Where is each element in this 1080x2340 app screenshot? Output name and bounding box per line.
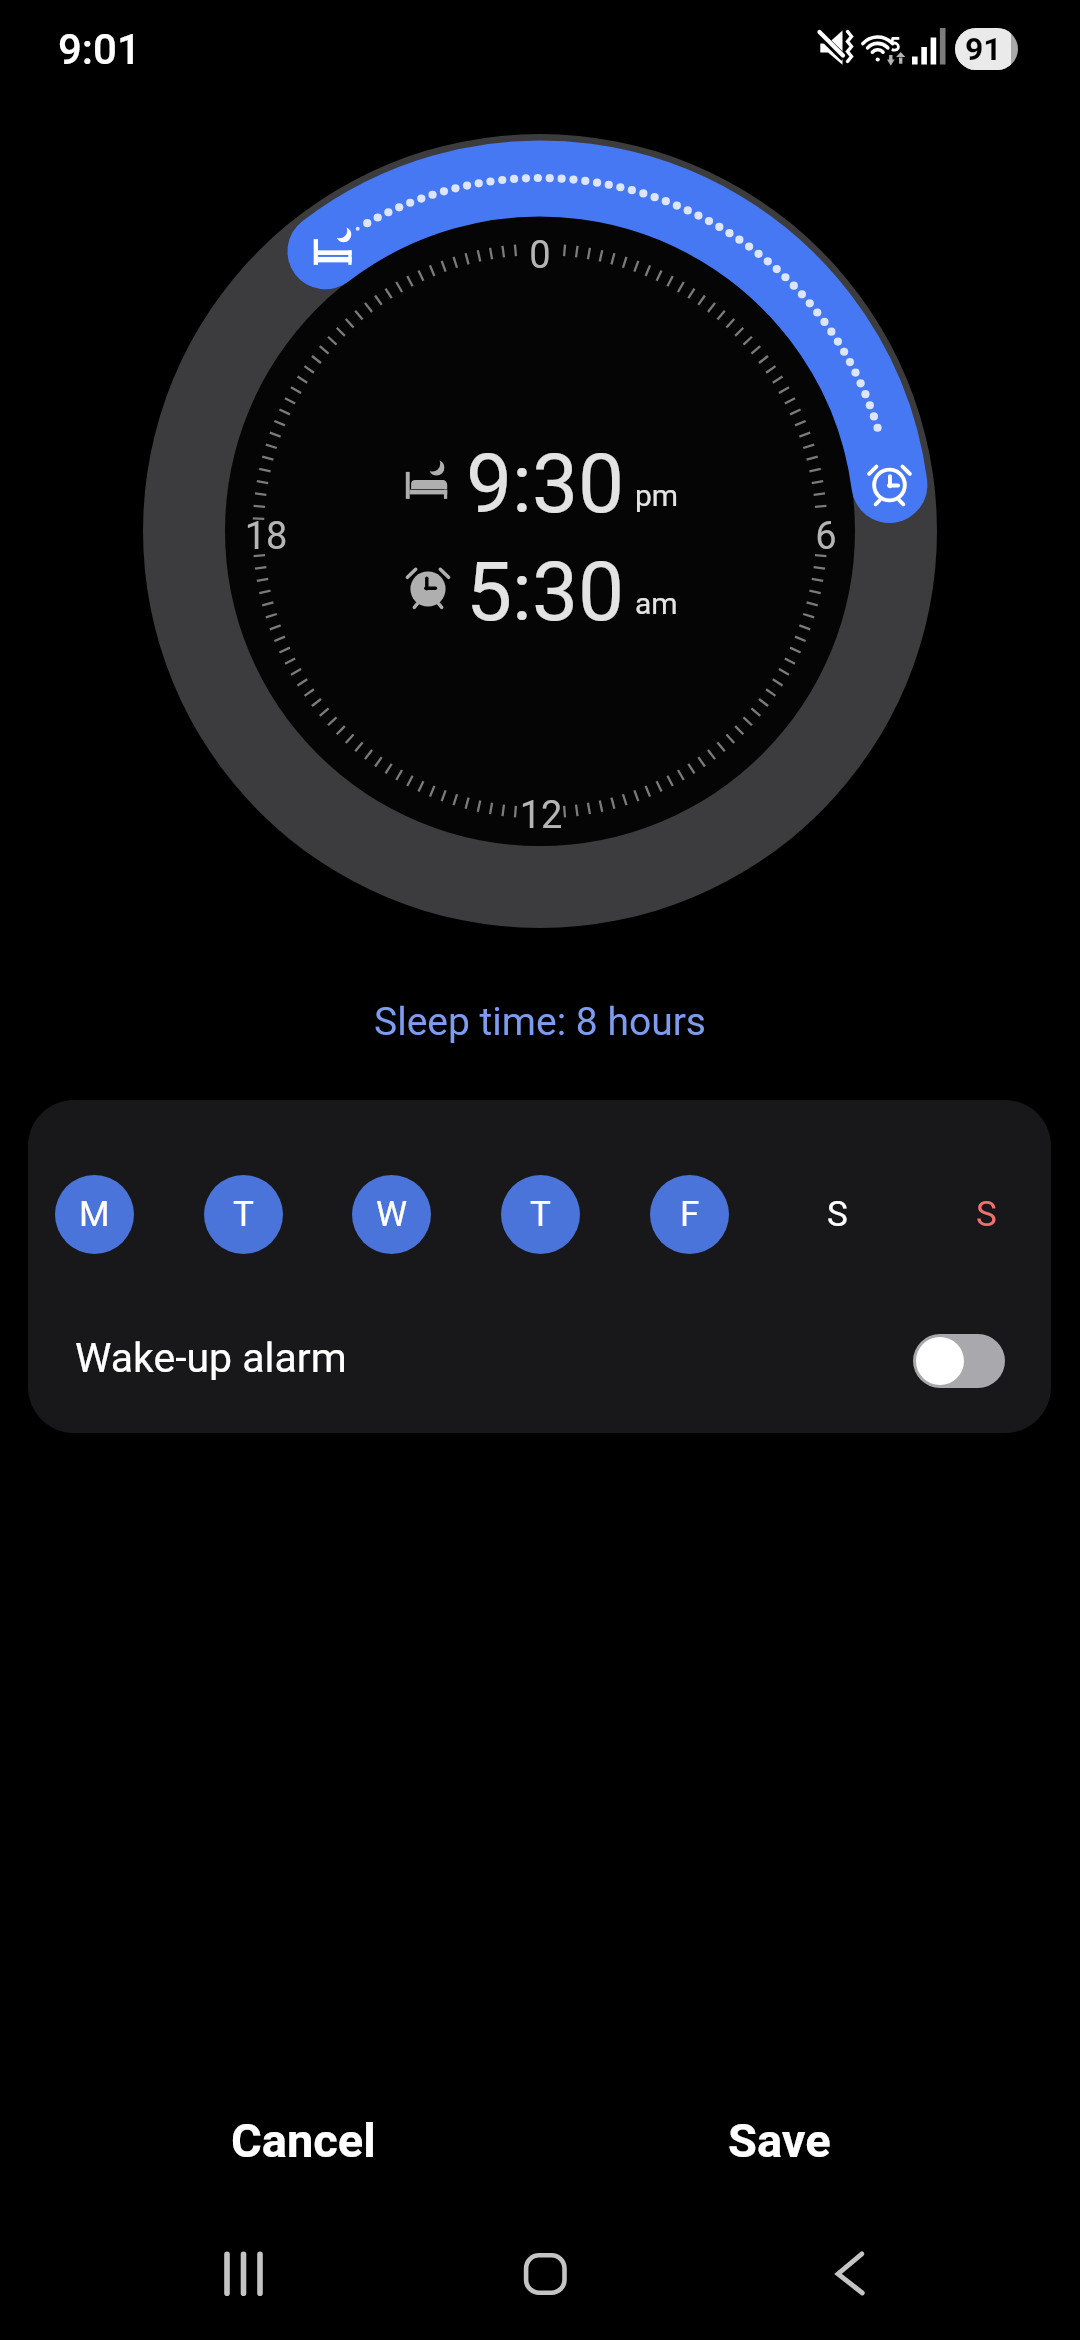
button[interactable]: T xyxy=(501,1175,580,1254)
staticText: T xyxy=(530,1194,551,1235)
button[interactable]: F xyxy=(650,1175,729,1254)
staticText: S xyxy=(827,1194,848,1235)
staticText: T xyxy=(233,1194,254,1235)
button[interactable]: Wake-up time xyxy=(400,542,680,634)
staticText: 0 xyxy=(490,233,590,278)
button[interactable]: W xyxy=(352,1175,431,1254)
staticText: 9:30 xyxy=(466,436,625,528)
button[interactable]: Back xyxy=(796,2221,896,2321)
staticText: 18 xyxy=(216,514,316,559)
staticText: am xyxy=(635,586,678,621)
button[interactable]: M xyxy=(55,1175,134,1254)
button[interactable]: S xyxy=(798,1175,877,1254)
staticText: 12 xyxy=(491,793,591,838)
staticText: 6 xyxy=(776,514,876,559)
staticText: 9:01 xyxy=(58,25,141,74)
button[interactable]: Home xyxy=(494,2221,594,2321)
staticText: pm xyxy=(635,478,679,513)
button[interactable]: Sleep time: 8 hours xyxy=(374,999,706,1045)
staticText: S xyxy=(976,1194,997,1235)
staticText: 91 xyxy=(965,30,1002,68)
staticText: Cancel xyxy=(231,2113,376,2168)
staticText: W xyxy=(376,1194,408,1235)
button[interactable]: Wake-up alarm toggle, off xyxy=(913,1334,1005,1388)
button[interactable]: Cancel xyxy=(192,2092,414,2188)
button[interactable]: Wake-up alarm xyxy=(28,1288,1051,1422)
button[interactable]: Recent apps xyxy=(194,2221,294,2321)
staticText: 5:30 xyxy=(466,544,625,636)
button[interactable]: Save xyxy=(668,2092,890,2188)
staticText: M xyxy=(79,1194,110,1235)
staticText: F xyxy=(680,1194,700,1235)
button[interactable]: T xyxy=(204,1175,283,1254)
staticText: Wake-up alarm xyxy=(75,1334,347,1382)
staticText: Save xyxy=(728,2113,831,2168)
button[interactable]: S xyxy=(947,1175,1026,1254)
button[interactable]: Bedtime xyxy=(400,434,680,526)
